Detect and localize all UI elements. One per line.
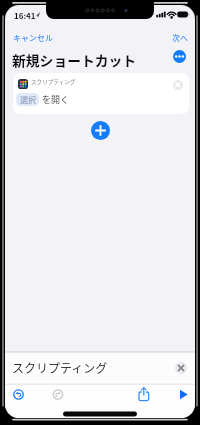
staticText: を開く <box>42 93 70 106</box>
button[interactable] <box>136 386 151 401</box>
staticText: 16:41 <box>14 10 36 22</box>
button[interactable] <box>51 387 66 402</box>
button[interactable] <box>173 50 186 63</box>
staticText: スクリプティング <box>31 78 76 86</box>
button[interactable]: キャンセル <box>9 30 49 42</box>
button[interactable] <box>91 121 110 140</box>
staticText: キャンセル <box>13 32 53 44</box>
staticText: 次へ <box>172 32 188 44</box>
button[interactable]: 次へ <box>165 30 181 42</box>
button[interactable] <box>177 387 191 401</box>
staticText: 新規ショートカット <box>12 50 137 70</box>
button[interactable]: 選択 <box>16 93 39 106</box>
button[interactable] <box>173 80 183 90</box>
staticText: スクリプティング <box>12 359 108 376</box>
button[interactable] <box>175 362 187 374</box>
button[interactable] <box>11 387 26 402</box>
staticText: 選択 <box>20 94 36 106</box>
button[interactable]: スクリプティング <box>5 352 195 384</box>
button[interactable]: スクリプティング <box>13 73 189 114</box>
